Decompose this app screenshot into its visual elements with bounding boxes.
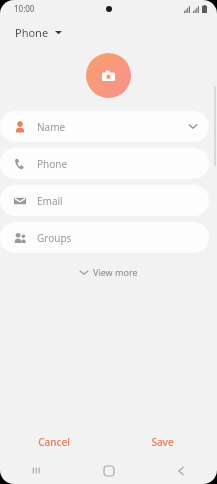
staticText: View more [93, 266, 138, 278]
button[interactable]: Add contact photo [86, 53, 131, 98]
button[interactable]: Name [0, 111, 209, 142]
button[interactable]: Phone [0, 148, 209, 179]
button[interactable]: Email [0, 185, 209, 216]
staticText: Groups [37, 231, 72, 245]
button[interactable]: Phone [12, 22, 65, 43]
staticText: Phone [37, 157, 68, 171]
button[interactable]: Home [73, 457, 145, 484]
staticText: Save [151, 435, 174, 449]
button[interactable]: View more [72, 262, 146, 282]
button[interactable]: Cancel [0, 427, 108, 457]
button[interactable]: Back [145, 457, 217, 484]
staticText: Phone [15, 25, 49, 40]
staticText: Email [37, 194, 63, 208]
staticText: Cancel [38, 435, 70, 449]
staticText: 10:00 [14, 3, 35, 14]
button[interactable]: Groups [0, 222, 209, 253]
staticText: Name [37, 120, 66, 134]
button[interactable]: Recent apps [0, 457, 73, 484]
button[interactable]: Save [108, 427, 217, 457]
